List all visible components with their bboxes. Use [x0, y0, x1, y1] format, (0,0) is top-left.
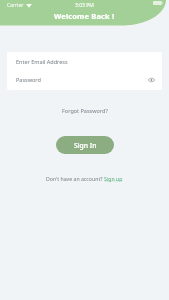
button[interactable]: Show password: [145, 74, 157, 86]
staticText: Sign In: [74, 141, 97, 150]
staticText: Don't have an account?: [46, 175, 104, 182]
staticText: Welcome Back !: [54, 11, 115, 21]
button[interactable]: Forgot Password?: [56, 104, 114, 117]
staticText: 3:03 PM: [75, 2, 94, 9]
button[interactable]: Enter Email Address: [7, 52, 162, 71]
button[interactable]: Password: [7, 71, 162, 90]
staticText: Sign up: [104, 175, 123, 182]
button[interactable]: Sign In: [56, 136, 114, 154]
staticText: Password: [16, 76, 41, 83]
staticText: Carrier: [7, 2, 24, 9]
staticText: Forgot Password?: [62, 107, 108, 114]
button[interactable]: Sign up: [104, 175, 123, 182]
staticText: Enter Email Address: [16, 58, 68, 65]
